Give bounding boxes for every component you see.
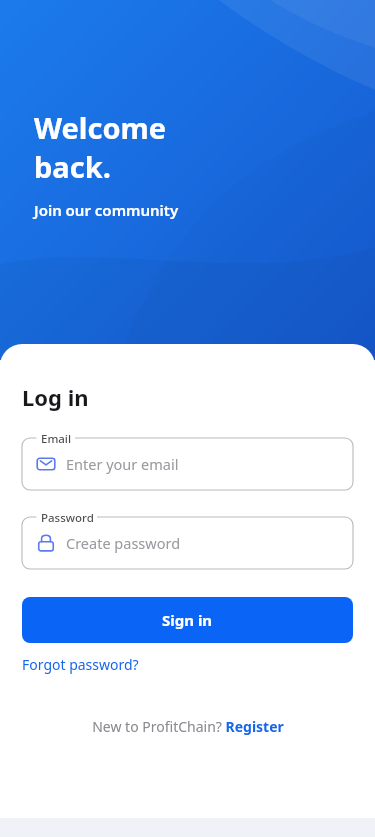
other: Email — [35, 453, 57, 475]
staticText: New to ProfitChain? Register — [92, 717, 284, 736]
staticText: Forgot password? — [22, 655, 139, 674]
other: Password — [35, 532, 57, 554]
button[interactable]: Sign in — [22, 597, 353, 643]
button[interactable]: Password — [22, 517, 353, 569]
button[interactable]: Forgot password? — [22, 652, 139, 677]
staticText: Email — [41, 431, 72, 447]
button[interactable]: New to ProfitChain? Register — [0, 713, 375, 740]
staticText: Create password — [66, 533, 181, 553]
staticText: Sign in — [162, 610, 213, 630]
button[interactable]: Email — [22, 438, 353, 490]
staticText: Log in — [22, 382, 89, 412]
staticText: Password — [41, 510, 94, 526]
staticText: Enter your email — [66, 454, 179, 474]
staticText: back. — [34, 147, 111, 186]
staticText: Join our community — [34, 200, 179, 220]
staticText: Welcome — [34, 108, 167, 147]
